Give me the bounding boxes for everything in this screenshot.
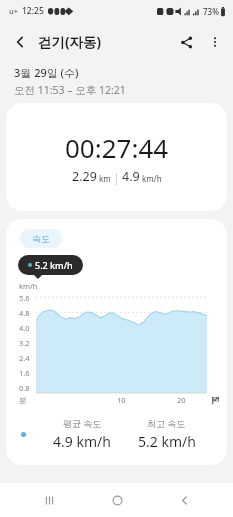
button[interactable]: Share — [171, 27, 201, 57]
button[interactable]: Back — [4, 26, 36, 58]
staticText: 5.2 km/h — [35, 259, 73, 271]
button[interactable]: 속도 — [20, 229, 62, 248]
button[interactable]: More options — [201, 28, 229, 56]
staticText: 4.0 — [19, 323, 30, 333]
staticText: 걷기(자동) — [38, 33, 102, 51]
staticText: 5.2 km/h — [138, 432, 196, 451]
other: Finish — [212, 397, 219, 404]
button[interactable]: 속도 — [6, 219, 227, 465]
staticText: 분 — [19, 396, 27, 405]
staticText: km — [99, 173, 111, 184]
staticText: 00:27:44 — [65, 130, 169, 165]
staticText: 최고 속도 — [147, 417, 186, 429]
staticText: 5.6 — [19, 293, 30, 303]
staticText: 10 — [117, 395, 126, 405]
staticText: 속도 — [32, 233, 50, 244]
button[interactable]: Back — [166, 483, 202, 517]
staticText: km/h — [142, 173, 162, 184]
staticText: 0.8 — [19, 383, 30, 393]
staticText: 20 — [177, 395, 186, 405]
button[interactable]: Recents — [31, 483, 67, 517]
staticText: 73% — [203, 6, 219, 17]
staticText: 4.8 — [19, 308, 30, 318]
staticText: 12:25 — [22, 5, 44, 17]
staticText: 1.6 — [19, 368, 30, 378]
staticText: 3월 29일 (수) — [14, 65, 79, 80]
staticText: 평균 속도 — [63, 417, 102, 429]
staticText: 4.9 — [122, 168, 140, 185]
staticText: 오전 11:53 – 오후 12:21 — [14, 83, 126, 97]
staticText: 2.4 — [19, 353, 30, 363]
staticText: u+ — [9, 6, 18, 16]
button[interactable]: 00:27:44 — [6, 103, 227, 211]
staticText: km/h — [19, 281, 38, 291]
button[interactable]: Home — [99, 483, 135, 517]
staticText: 4.9 km/h — [53, 432, 111, 451]
staticText: 2.29 — [72, 168, 97, 185]
staticText: 3.2 — [19, 338, 30, 348]
